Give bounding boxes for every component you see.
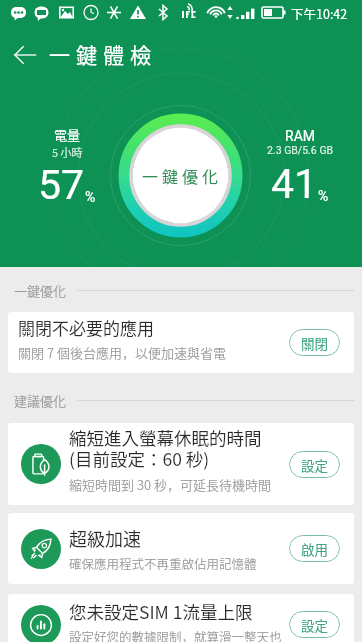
staticText: 縮短進入螢幕休眠的時間 (目前設定：60 秒) [69,425,262,471]
staticText: 一鍵優化 [142,164,223,187]
button[interactable]: Back [8,38,41,71]
staticText: 41 [271,160,318,208]
button[interactable]: 關閉 [289,329,340,356]
staticText: RAM [285,128,315,144]
staticText: 關閉不必要的應用 [18,315,154,340]
staticText: 2.3 GB/5.6 GB [267,144,334,156]
button[interactable]: 一鍵優化 [110,105,251,246]
button[interactable]: 關閉不必要的應用 [8,312,354,373]
staticText: 設定 [301,455,328,475]
staticText: 確保應用程式不再重啟佔用記憶體 [69,554,257,572]
staticText: % [85,189,96,205]
staticText: 電量 [54,125,81,144]
staticText: 關閉 7 個後台應用，以便加速與省電 [18,343,226,362]
button[interactable]: 啟用 [289,535,340,562]
staticText: 縮短時間到 30 秒，可延長待機時間 [69,475,272,494]
staticText: 5 小時 [52,144,83,160]
staticText: 下午10:42 [291,4,348,22]
button[interactable]: 設定 [289,451,340,478]
staticText: % [318,188,329,204]
button[interactable]: 超級加速 [8,513,354,584]
staticText: 一鍵體檢 [49,39,157,69]
staticText: 啟用 [301,539,328,559]
button[interactable]: 您未設定SIM 1流量上限 [8,594,354,642]
staticText: 一鍵優化 [14,281,67,299]
staticText: 設定好您的數據限制，就算滑一整天也安心 [69,627,289,642]
staticText: 關閉 [301,333,328,353]
staticText: 建議優化 [14,391,67,409]
staticText: 您未設定SIM 1流量上限 [69,599,253,624]
button[interactable]: 縮短進入螢幕休眠的時間 (目前設定：60 秒) [8,423,354,505]
staticText: 57 [38,161,85,209]
button[interactable]: 設定 [289,611,340,638]
staticText: 超級加速 [69,525,141,551]
staticText: 設定 [301,615,328,635]
